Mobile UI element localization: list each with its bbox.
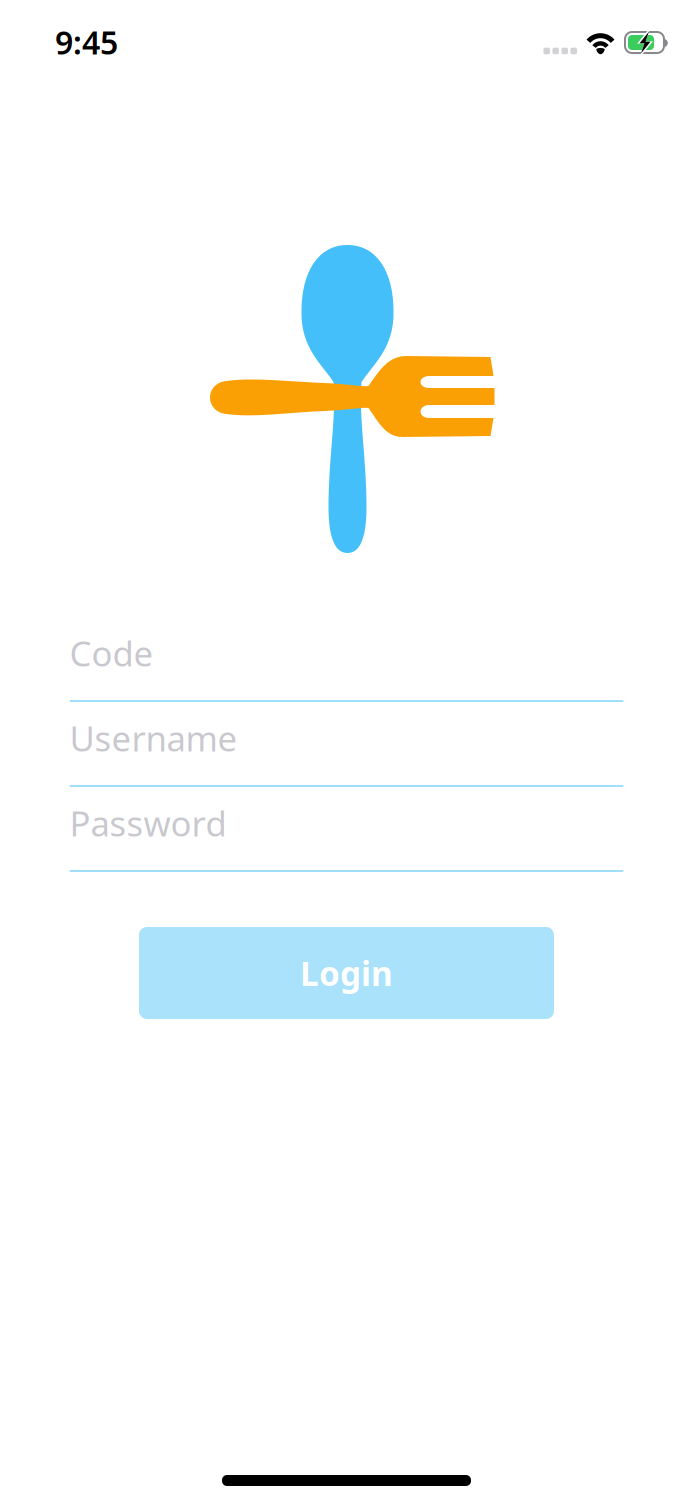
button[interactable]: Password bbox=[69, 787, 623, 872]
button[interactable]: Code bbox=[69, 617, 623, 702]
staticText: Login bbox=[300, 951, 393, 995]
button[interactable]: Login bbox=[139, 927, 554, 1019]
staticText: Code bbox=[69, 630, 153, 676]
staticText: Username bbox=[69, 715, 237, 761]
staticText: 9:45 bbox=[55, 21, 118, 63]
staticText: Password bbox=[69, 800, 226, 846]
button[interactable]: Username bbox=[69, 702, 623, 787]
